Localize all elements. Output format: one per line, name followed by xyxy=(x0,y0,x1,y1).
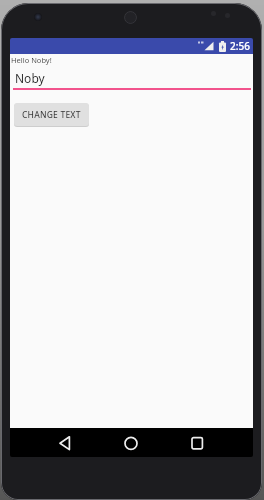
button[interactable]: CHANGE TEXT xyxy=(14,103,89,126)
staticText: CHANGE TEXT xyxy=(22,109,81,121)
button[interactable] xyxy=(120,432,142,454)
button[interactable]: Noby xyxy=(13,66,251,90)
staticText: 2:56 xyxy=(230,39,250,53)
staticText: Noby xyxy=(15,70,45,86)
button[interactable] xyxy=(186,432,208,454)
staticText: Hello Noby! xyxy=(11,55,52,65)
button[interactable] xyxy=(54,432,76,454)
